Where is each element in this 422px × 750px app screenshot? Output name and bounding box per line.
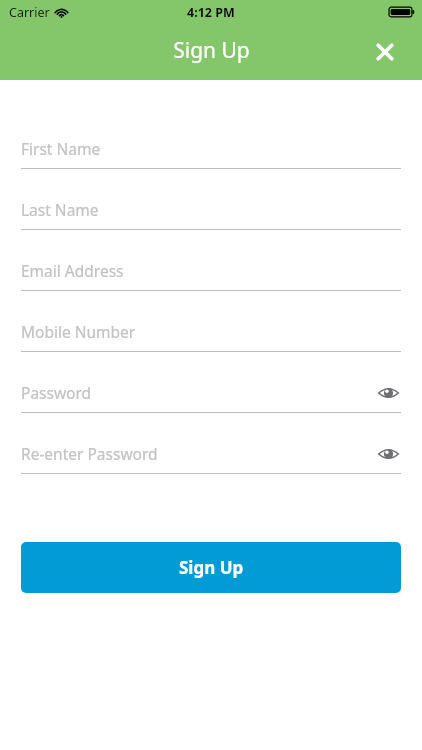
button[interactable]: Email Address <box>0 257 422 318</box>
staticText: First Name <box>21 138 101 159</box>
staticText: Password <box>21 382 92 403</box>
button[interactable]: Re-enter Password <box>0 440 422 501</box>
button[interactable]: Show password <box>375 380 401 406</box>
button[interactable]: First Name <box>0 135 422 196</box>
staticText: Last Name <box>21 199 99 220</box>
button[interactable]: Sign Up <box>21 542 401 593</box>
staticText: Re-enter Password <box>21 443 158 464</box>
button[interactable]: Password <box>0 379 422 440</box>
button[interactable]: Last Name <box>0 196 422 257</box>
staticText: Sign Up <box>179 556 244 579</box>
staticText: Carrier <box>9 4 50 21</box>
staticText: Email Address <box>21 260 124 281</box>
staticText: Mobile Number <box>21 321 136 342</box>
button[interactable]: Show password <box>375 441 401 467</box>
staticText: Sign Up <box>173 36 250 65</box>
staticText: 4:12 PM <box>187 4 235 21</box>
button[interactable]: Close <box>363 30 407 74</box>
button[interactable]: Mobile Number <box>0 318 422 379</box>
